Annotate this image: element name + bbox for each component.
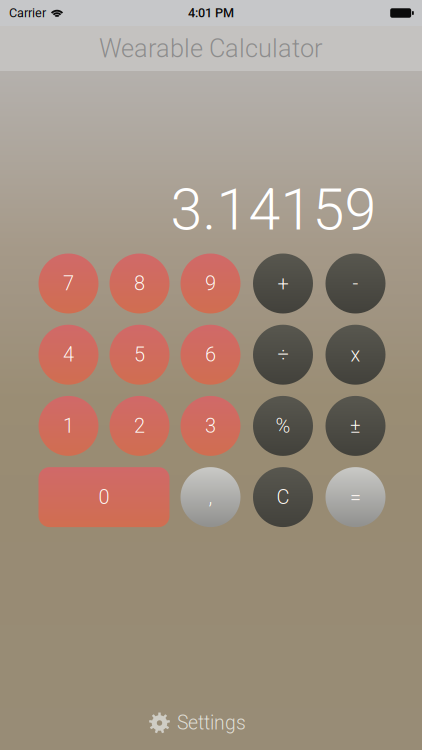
button[interactable]: 9 [180, 253, 240, 313]
staticText: 1 [63, 414, 74, 438]
button[interactable]: 3 [180, 396, 240, 456]
staticText: 9 [205, 272, 216, 295]
staticText: + [277, 272, 288, 295]
staticText: 4 [63, 343, 74, 366]
staticText: , [208, 485, 212, 509]
button[interactable]: , [180, 467, 240, 527]
staticText: 3.14159 [170, 176, 376, 244]
staticText: = [350, 485, 361, 509]
button[interactable]: ± [325, 396, 385, 456]
button[interactable]: 8 [109, 253, 169, 313]
staticText: C [276, 485, 289, 509]
staticText: x [350, 343, 360, 366]
staticText: % [275, 414, 290, 438]
button[interactable]: 6 [180, 325, 240, 385]
button[interactable]: 7 [38, 253, 98, 313]
button[interactable]: C [253, 467, 313, 527]
staticText: 5 [134, 343, 145, 366]
button[interactable]: = [325, 467, 385, 527]
staticText: Wearable Calculator [99, 34, 323, 63]
button[interactable]: 0 [38, 467, 169, 527]
button[interactable]: 2 [109, 396, 169, 456]
staticText: 8 [134, 272, 145, 295]
staticText: ÷ [277, 343, 288, 366]
staticText: 2 [134, 414, 145, 438]
button[interactable]: Settings [139, 706, 256, 740]
staticText: 7 [63, 272, 74, 295]
button[interactable]: 4 [38, 325, 98, 385]
button[interactable]: 1 [38, 396, 98, 456]
staticText: Carrier [9, 6, 46, 20]
staticText: ± [350, 414, 361, 438]
button[interactable]: ÷ [253, 325, 313, 385]
staticText: 3 [205, 414, 216, 438]
button[interactable]: % [253, 396, 313, 456]
staticText: 4:01 PM [188, 6, 234, 20]
button[interactable]: 5 [109, 325, 169, 385]
staticText: 0 [98, 485, 109, 509]
button[interactable]: + [253, 253, 313, 313]
button[interactable]: - [325, 253, 385, 313]
staticText: 6 [205, 343, 216, 366]
staticText: - [352, 272, 358, 295]
button[interactable]: x [325, 325, 385, 385]
staticText: Settings [177, 712, 246, 734]
